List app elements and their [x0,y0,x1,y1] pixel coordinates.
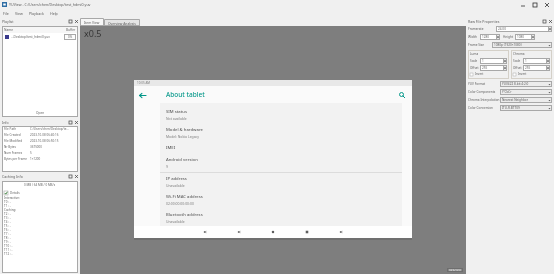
button[interactable]: Close Raw File Properties [547,18,553,24]
staticText: IP address [166,176,187,182]
staticText: C:/Users/chen/Desktop/te... [30,127,69,131]
button[interactable]: 255 [480,65,507,71]
staticText: T5 : - [4,224,11,228]
staticText: File Modified [4,139,23,143]
staticText: File Path [4,127,17,131]
staticText: Bluetooth address [166,212,203,218]
staticText: T0 : - [4,200,11,204]
button[interactable]: SIM status [160,106,402,124]
button[interactable]: IP address [160,173,402,191]
staticText: About tablet [166,90,205,99]
button[interactable]: Close Playlist [73,18,79,24]
button[interactable]: ...Desktop/test_hdmi0.yuv [2,33,78,41]
staticText: 2023-10-08 06:50:15 [30,139,59,143]
staticText: Model: Nokia Legacy [166,134,199,139]
staticText: 24.00 [498,27,506,31]
staticText: Offset [513,66,522,70]
button[interactable]: ITU-R.BT709 [500,105,552,111]
button[interactable]: File [0,11,12,16]
button[interactable]: Help [47,11,61,16]
button[interactable]: Wi-Fi MAC address [160,191,402,209]
button[interactable]: 1080 [515,34,535,40]
staticText: T8 : - [4,236,11,240]
staticText: x0.5 [84,27,102,39]
button[interactable]: Float Info [67,119,73,125]
staticText: Nr Bytes [4,145,16,149]
staticText: T7 : - [4,232,11,236]
button[interactable]: YUV422 8-bit 4:2:0 [500,81,552,87]
staticText: Invert [475,72,484,76]
staticText: Height [503,35,515,39]
staticText: (0/4) 0/0 [449,268,461,272]
button[interactable]: Close Caching Info [73,173,79,179]
staticText: 1080p (1920×1080) [494,43,522,47]
button[interactable]: 255 [523,65,550,71]
staticText: 1280 [482,35,490,39]
staticText: YUV422 8-bit 4:2:0 [502,82,529,86]
staticText: Name [4,28,13,32]
staticText: Chroma Interpolation [468,98,500,102]
staticText: ...Desktop/test_hdmi0.yuv [11,35,50,39]
button[interactable]: 1280 [480,34,500,40]
staticText: Overview Analysis [108,21,136,25]
staticText: 3675000 [30,145,43,149]
staticText: ITU-R.BT709 [502,106,520,110]
button[interactable]: Back [234,227,244,237]
staticText: Scale [470,59,478,63]
button[interactable]: Overview Analysis [104,19,140,26]
button[interactable]: Invert [470,71,507,77]
staticText: Framerate [468,27,484,31]
staticText: Nearest Neighbor [502,98,528,102]
button[interactable]: Playback [26,11,47,16]
button[interactable]: max [529,0,541,9]
button[interactable]: 24.00 [496,26,552,32]
staticText: Color Components [468,90,496,94]
button[interactable]: min [517,0,529,9]
staticText: Caching: [4,208,17,212]
staticText: Y'CbCr [502,90,512,94]
button[interactable]: 1 [523,58,550,64]
button[interactable]: Recents [302,227,312,237]
button[interactable]: View [12,11,26,16]
button[interactable]: Home [268,227,278,237]
button[interactable]: VolumeUp [336,227,346,237]
staticText: 1×1200 [30,157,41,161]
button[interactable]: VolumeDown [200,227,210,237]
button[interactable]: Invert [513,71,550,77]
staticText: Model & hardware [166,127,203,133]
staticText: Android version [166,157,198,163]
staticText: Luma [470,52,479,56]
button[interactable]: Android version [160,154,402,172]
staticText: View [15,11,23,16]
staticText: Invert [518,72,527,76]
button[interactable]: 1 [480,58,507,64]
button[interactable]: Back [134,87,150,103]
button[interactable]: Close Info [73,119,79,125]
staticText: T10 : - [4,244,13,248]
staticText: 255 [525,66,531,70]
staticText: T3 : - [4,216,11,220]
staticText: Frame Size [468,43,492,47]
button[interactable]: Float Caching Info [67,173,73,179]
button[interactable]: Search [394,87,410,103]
button[interactable]: Model & hardware [160,124,402,142]
button[interactable]: Details [2,189,78,196]
staticText: YUView - C:/Users/chen/Desktop/test_hdmi… [9,2,91,7]
button[interactable]: IMEI [160,142,402,154]
button[interactable]: Nearest Neighbor [500,97,552,103]
staticText: 9 [166,164,168,169]
button[interactable]: Item View [80,18,104,26]
button[interactable]: Bluetooth address [160,209,402,226]
button[interactable]: close [541,0,553,9]
button[interactable]: 1080p (1920×1080) [492,42,552,48]
staticText: Details [10,191,20,195]
staticText: T11 : - [4,248,13,252]
button[interactable]: Y'CbCr [500,89,552,95]
staticText: 2023-10-08 06:40:16 [30,133,59,137]
button[interactable]: Float Playlist [67,18,73,24]
staticText: Num Frames [4,151,23,155]
button[interactable]: Float Raw File Properties [541,18,547,24]
staticText: 02:00:00:00:00:00 [166,201,194,206]
staticText: Caching Info [2,174,23,179]
staticText: 0 MB / 64 MB / 0 MB/s [24,183,56,187]
